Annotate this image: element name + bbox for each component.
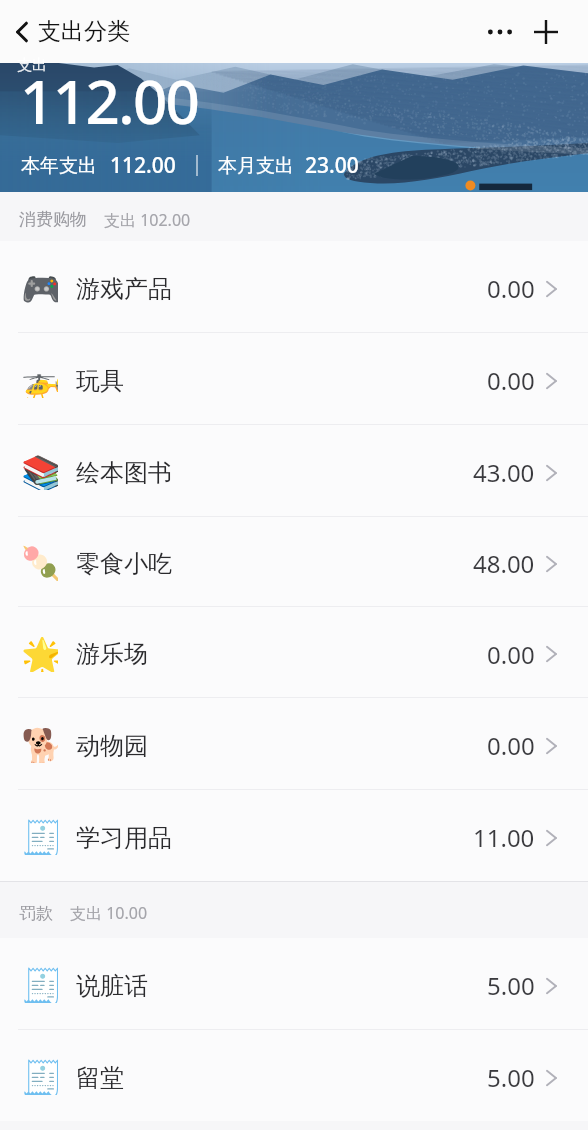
staticText: 玩具 — [76, 366, 124, 396]
staticText: 本月支出 — [218, 154, 294, 178]
staticText: 11.00 — [473, 821, 535, 854]
button[interactable]: 🧾 — [0, 938, 588, 1029]
staticText: 0.00 — [487, 729, 535, 762]
staticText: 5.00 — [487, 1061, 535, 1094]
button[interactable]: 🐕 — [0, 698, 588, 789]
button[interactable]: 📚 — [0, 425, 588, 516]
staticText: 支出 10.00 — [70, 902, 148, 924]
staticText: 消费购物 — [19, 209, 87, 230]
staticText: 学习用品 — [76, 823, 172, 853]
staticText: 支出 102.00 — [104, 209, 191, 231]
staticText: 游乐场 — [76, 639, 148, 669]
staticText: 动物园 — [76, 731, 148, 761]
staticText: 📚 — [21, 453, 58, 490]
staticText: 本年支出 — [21, 154, 97, 178]
button[interactable]: 🧾 — [0, 1030, 588, 1121]
button[interactable]: Add category — [523, 9, 569, 55]
staticText: 48.00 — [473, 547, 535, 580]
staticText: 支出分类 — [38, 17, 130, 46]
staticText: 0.00 — [487, 638, 535, 671]
staticText: 罚款 — [19, 903, 53, 924]
button[interactable]: 🧾 — [0, 790, 588, 881]
staticText: 112.00 — [20, 60, 199, 142]
button[interactable]: 🎮 — [0, 241, 588, 332]
staticText: 🌟 — [21, 635, 58, 672]
button[interactable]: More options — [477, 9, 523, 55]
staticText: 43.00 — [473, 456, 535, 489]
staticText: 🍡 — [21, 544, 58, 581]
staticText: 支出 — [17, 56, 47, 75]
staticText: 留堂 — [76, 1063, 124, 1093]
staticText: 说脏话 — [76, 971, 148, 1001]
button[interactable]: 🚁 — [0, 333, 588, 424]
staticText: 0.00 — [487, 364, 535, 397]
staticText: 🧾 — [21, 1058, 58, 1095]
button[interactable]: 🌟 — [0, 607, 588, 697]
staticText: 🧾 — [21, 966, 58, 1003]
button[interactable]: 🍡 — [0, 517, 588, 606]
staticText: 游戏产品 — [76, 274, 172, 304]
staticText: 🚁 — [21, 361, 58, 398]
staticText: 零食小吃 — [76, 549, 172, 579]
button[interactable]: Back — [0, 10, 44, 54]
staticText: 23.00 — [305, 151, 359, 180]
staticText: 🧾 — [21, 818, 58, 855]
staticText: 🎮 — [21, 269, 58, 306]
staticText: 🐕 — [21, 726, 58, 763]
staticText: 绘本图书 — [76, 458, 172, 488]
staticText: 0.00 — [487, 272, 535, 305]
staticText: 5.00 — [487, 969, 535, 1002]
staticText: 112.00 — [110, 151, 176, 180]
